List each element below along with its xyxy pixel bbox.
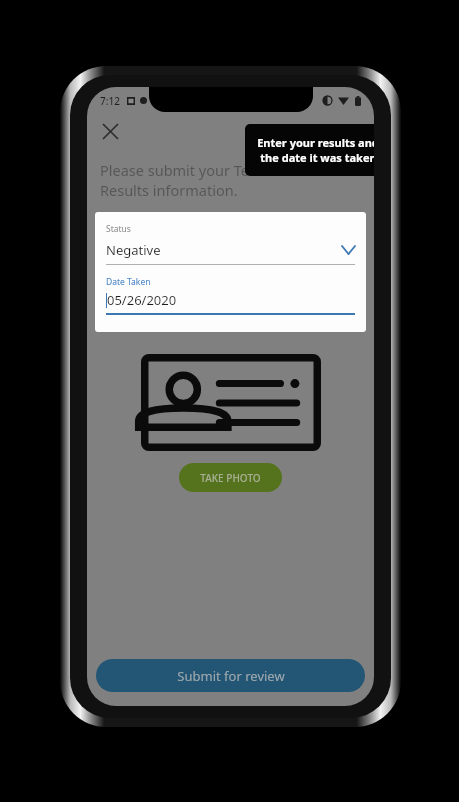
- button[interactable]: Negative: [106, 241, 355, 259]
- staticText: 7:12: [100, 94, 120, 108]
- staticText: 05/26/2020: [107, 291, 177, 309]
- button[interactable]: 05/26/2020: [106, 291, 355, 309]
- staticText: FAQ: [339, 123, 362, 139]
- staticText: the date it was taken: [260, 150, 374, 165]
- button[interactable]: Close: [93, 114, 127, 148]
- staticText: Please submit your Test: [100, 160, 262, 180]
- button[interactable]: FAQ: [335, 119, 366, 143]
- staticText: Status: [106, 223, 131, 235]
- staticText: Results information.: [100, 180, 238, 200]
- button[interactable]: Submit for review: [96, 659, 365, 692]
- staticText: Negative: [106, 241, 161, 259]
- staticText: Submit for review: [177, 667, 285, 685]
- staticText: TAKE PHOTO: [200, 471, 261, 485]
- staticText: Enter your results and: [257, 135, 374, 150]
- staticText: Date Taken: [106, 276, 151, 288]
- button[interactable]: TAKE PHOTO: [179, 463, 282, 492]
